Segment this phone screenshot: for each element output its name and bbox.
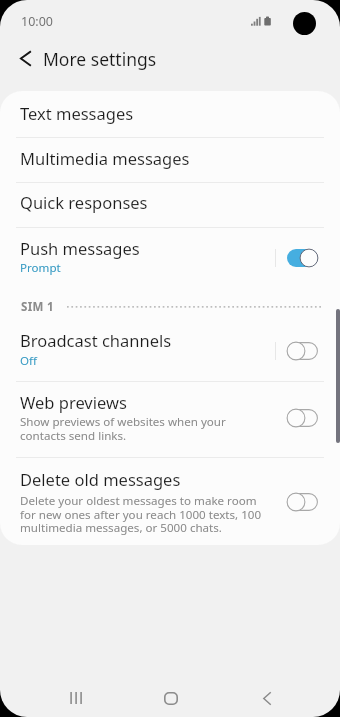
button[interactable]: Switch off	[287, 493, 318, 511]
staticText: Delete your oldest messages to make room…	[20, 493, 262, 535]
button[interactable]: Web previews	[0, 381, 340, 457]
button[interactable]: Switch off	[287, 342, 318, 360]
staticText: Push messages	[20, 237, 140, 259]
staticText: Show previews of websites when your cont…	[20, 414, 226, 443]
button[interactable]: Switch off	[287, 409, 318, 427]
staticText: Broadcast channels	[20, 329, 172, 351]
button[interactable]: Quick responses	[0, 182, 340, 227]
staticText: Text messages	[20, 102, 134, 124]
staticText: SIM 1	[21, 299, 54, 315]
button[interactable]: Switch on	[287, 249, 318, 267]
button[interactable]: Multimedia messages	[0, 137, 340, 182]
staticText: More settings	[43, 47, 157, 71]
button[interactable]: Recent apps	[53, 674, 98, 717]
button[interactable]: Push messages	[0, 227, 340, 281]
staticText: Prompt	[20, 260, 61, 276]
button[interactable]: Back	[244, 674, 289, 717]
staticText: Multimedia messages	[20, 147, 190, 169]
button[interactable]: Broadcast channels	[0, 326, 340, 381]
staticText: Quick responses	[20, 191, 148, 213]
staticText: 10:00	[21, 13, 53, 30]
button[interactable]: Text messages	[0, 91, 340, 137]
staticText: Off	[20, 353, 38, 369]
button[interactable]: Delete old messages	[0, 457, 340, 545]
button[interactable]: Home	[148, 674, 193, 717]
staticText: Delete old messages	[20, 468, 181, 490]
staticText: Web previews	[20, 391, 127, 413]
button[interactable]: Navigate up	[9, 42, 41, 74]
